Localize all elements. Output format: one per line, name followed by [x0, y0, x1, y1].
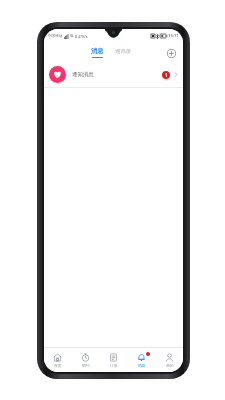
button[interactable]: 通讯录 [111, 48, 136, 57]
button[interactable]: 首页 [44, 348, 71, 372]
staticText: 8.47K/s [75, 34, 88, 39]
staticText: 消息 [138, 363, 146, 368]
button[interactable]: 预约 [71, 348, 99, 372]
staticText: 中国移动 [48, 34, 63, 39]
staticText: 我的 [166, 363, 174, 368]
button[interactable]: 消息 [87, 46, 108, 59]
button[interactable]: 通知消息 [44, 62, 183, 87]
staticText: 通讯录 [115, 48, 132, 55]
staticText: 首页 [54, 363, 62, 368]
staticText: 预约 [82, 363, 90, 368]
button[interactable]: Add [164, 46, 178, 60]
staticText: 电 [70, 34, 74, 39]
staticText: 通知消息 [72, 71, 94, 78]
button[interactable]: 我的 [155, 348, 183, 372]
staticText: 15:11 [168, 33, 179, 39]
button[interactable]: 消息 [127, 348, 155, 372]
staticText: 订单 [110, 363, 118, 368]
staticText: 消息 [91, 47, 104, 55]
button[interactable]: 订单 [99, 348, 127, 372]
staticText: 1 [165, 72, 168, 78]
